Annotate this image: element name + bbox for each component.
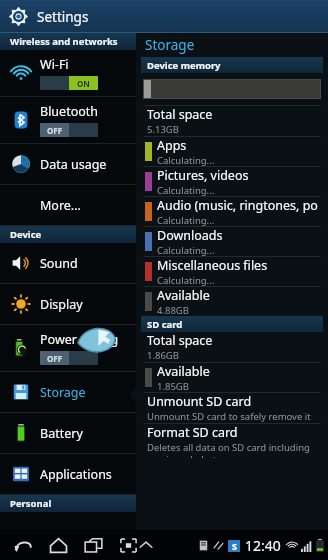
staticText: OFF: [47, 125, 63, 136]
staticText: ON: [77, 78, 90, 89]
button[interactable]: Screenshot: [111, 530, 146, 560]
button[interactable]: Expand: [134, 533, 158, 557]
button[interactable]: Downloads: [136, 227, 328, 256]
button[interactable]: More...: [0, 185, 136, 225]
staticText: Available: [157, 287, 210, 304]
staticText: Deletes all data on SD card including mu…: [147, 441, 310, 458]
button[interactable]: Data usage: [0, 144, 136, 184]
staticText: S: [232, 540, 237, 552]
button[interactable]: OFF: [40, 123, 98, 137]
staticText: Calculating...: [157, 274, 215, 286]
staticText: Calculating...: [157, 154, 215, 166]
staticText: Display: [40, 296, 83, 313]
staticText: Calculating...: [157, 184, 215, 196]
staticText: Bluetooth: [40, 103, 99, 120]
button[interactable]: Storage: [0, 372, 136, 412]
button[interactable]: Total space: [136, 106, 328, 136]
staticText: 12:40: [245, 536, 281, 555]
button[interactable]: Unmount SD card: [136, 393, 328, 423]
staticText: 5.13GB: [147, 123, 179, 136]
button[interactable]: Display: [0, 284, 136, 324]
staticText: Miscellaneous files: [157, 257, 268, 274]
button[interactable]: Audio (music, ringtones, po: [136, 197, 328, 226]
staticText: Wireless and networks: [10, 35, 118, 48]
staticText: Pictures, videos: [157, 167, 249, 184]
staticText: 1.86GB: [147, 349, 179, 362]
staticText: Format SD card: [147, 424, 238, 441]
button[interactable]: ON: [40, 76, 98, 90]
staticText: Battery: [40, 425, 83, 442]
staticText: OFF: [47, 353, 63, 364]
staticText: Sound: [40, 255, 78, 272]
button[interactable]: Bluetooth: [0, 97, 136, 143]
staticText: Device memory: [147, 59, 221, 72]
staticText: Total space: [147, 332, 213, 349]
staticText: Available: [157, 363, 210, 380]
staticText: Unmount SD card to safely remove it: [147, 410, 311, 423]
button[interactable]: Format SD card: [136, 424, 328, 458]
staticText: Total space: [147, 106, 213, 123]
button[interactable]: Recents: [76, 530, 111, 560]
button[interactable]: Wi-Fi: [0, 50, 136, 96]
staticText: Device: [10, 228, 42, 241]
staticText: Applications: [40, 466, 112, 483]
staticText: Calculating...: [157, 214, 215, 226]
button[interactable]: Home: [41, 530, 76, 560]
button[interactable]: Power saving: [0, 325, 136, 371]
staticText: Personal: [10, 497, 52, 510]
staticText: Data usage: [40, 156, 107, 173]
button[interactable]: Available: [136, 287, 328, 316]
button[interactable]: OFF: [40, 351, 98, 365]
staticText: Settings: [37, 8, 89, 26]
button[interactable]: Miscellaneous files: [136, 257, 328, 286]
staticText: Storage: [145, 36, 195, 54]
staticText: Calculating...: [157, 244, 215, 256]
staticText: Audio (music, ringtones, po: [157, 197, 318, 214]
staticText: More...: [40, 197, 81, 214]
staticText: 1.85GB: [157, 380, 189, 392]
staticText: 4.88GB: [157, 304, 189, 316]
button[interactable]: Sound: [0, 243, 136, 283]
staticText: SD card: [147, 318, 183, 331]
staticText: Power saving: [40, 331, 119, 348]
button[interactable]: Pictures, videos: [136, 167, 328, 196]
button[interactable]: Applications: [0, 454, 136, 494]
staticText: Downloads: [157, 227, 223, 244]
button[interactable]: Battery: [0, 413, 136, 453]
staticText: Unmount SD card: [147, 393, 252, 410]
staticText: Apps: [157, 137, 187, 154]
staticText: Storage: [40, 384, 86, 401]
button[interactable]: Back: [6, 530, 41, 560]
button[interactable]: Apps: [136, 137, 328, 166]
button[interactable]: Total space: [136, 332, 328, 362]
staticText: Wi-Fi: [40, 56, 69, 73]
button[interactable]: Available: [136, 363, 328, 392]
